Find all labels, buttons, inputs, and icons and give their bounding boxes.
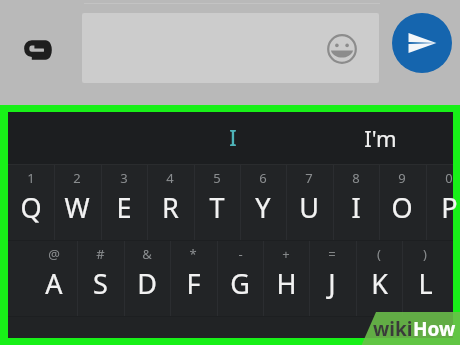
staticText: O	[391, 189, 413, 226]
staticText: E	[116, 189, 132, 226]
staticText: Q	[20, 189, 42, 226]
staticText: )	[423, 245, 427, 263]
staticText: A	[45, 265, 63, 302]
button[interactable]: 1	[8, 165, 54, 240]
button[interactable]: Emoji	[320, 27, 364, 71]
staticText: I	[351, 189, 361, 226]
staticText: How	[413, 316, 456, 342]
button[interactable]: )	[402, 241, 448, 316]
staticText: F	[186, 265, 201, 302]
button[interactable]: 9	[379, 165, 425, 240]
staticText: I'm	[364, 123, 397, 153]
staticText: 1	[27, 169, 35, 187]
button[interactable]: (	[356, 241, 402, 316]
staticText: W	[64, 189, 90, 226]
button[interactable]: &	[124, 241, 170, 316]
staticText: 7	[305, 169, 313, 187]
staticText: J	[328, 265, 336, 302]
staticText: G	[230, 265, 250, 302]
staticText: R	[162, 189, 179, 226]
button[interactable]: =	[309, 241, 355, 316]
button[interactable]: 5	[194, 165, 240, 240]
staticText: 8	[352, 169, 360, 187]
button[interactable]: +	[263, 241, 309, 316]
staticText: L	[418, 265, 433, 302]
button[interactable]: 0	[426, 165, 460, 240]
staticText: U	[299, 189, 319, 226]
staticText: T	[209, 189, 225, 226]
staticText: D	[137, 265, 157, 302]
staticText: 4	[166, 169, 174, 187]
staticText: &	[142, 245, 152, 263]
staticText: =	[328, 245, 336, 263]
staticText: 2	[73, 169, 81, 187]
staticText: Y	[255, 189, 271, 226]
staticText: @	[48, 245, 60, 263]
staticText: 0	[445, 169, 453, 187]
staticText: K	[371, 265, 388, 302]
button[interactable]: *	[170, 241, 216, 316]
button[interactable]: #	[77, 241, 123, 316]
staticText: S	[93, 265, 108, 302]
staticText: 5	[213, 169, 221, 187]
staticText: I	[229, 124, 237, 153]
button[interactable]: Attach file	[14, 28, 60, 72]
button[interactable]: -	[217, 241, 263, 316]
button[interactable]: Send message	[392, 13, 452, 73]
staticText: 3	[120, 169, 128, 187]
staticText: #	[96, 245, 105, 263]
staticText: H	[276, 265, 297, 302]
button[interactable]	[82, 13, 379, 83]
button[interactable]: 4	[147, 165, 193, 240]
button[interactable]: I'm	[308, 112, 453, 164]
button[interactable]: I	[158, 112, 308, 164]
staticText: 9	[398, 169, 406, 187]
button[interactable]: 6	[240, 165, 286, 240]
staticText: 6	[259, 169, 267, 187]
button[interactable]: 3	[101, 165, 147, 240]
staticText: *	[189, 245, 197, 263]
staticText: (	[377, 245, 381, 263]
button[interactable]: 2	[54, 165, 100, 240]
button[interactable]: 7	[286, 165, 332, 240]
button[interactable]: @	[31, 241, 77, 316]
staticText: wiki	[373, 316, 413, 342]
button[interactable]: 8	[333, 165, 379, 240]
staticText: +	[282, 245, 290, 263]
staticText: -	[238, 245, 243, 263]
staticText: P	[441, 189, 458, 226]
